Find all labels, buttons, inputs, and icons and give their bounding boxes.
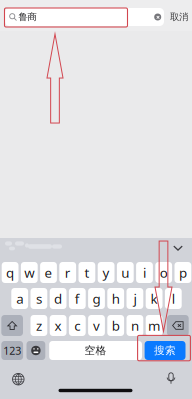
button[interactable]: y	[98, 262, 114, 283]
staticText: g	[92, 290, 100, 307]
staticText: k	[151, 290, 158, 307]
button[interactable]: Next keyboard	[6, 367, 30, 391]
button[interactable]: u	[117, 262, 134, 283]
button[interactable]: d	[50, 288, 66, 309]
button[interactable]: Delete	[167, 315, 189, 336]
button[interactable]: j	[126, 288, 143, 309]
staticText: u	[121, 264, 129, 281]
button[interactable]: a	[11, 288, 28, 309]
button[interactable]: f	[69, 288, 86, 309]
button[interactable]: Search	[145, 341, 185, 360]
staticText: m	[148, 317, 160, 334]
button[interactable]: l	[165, 288, 182, 309]
button[interactable]: i	[136, 262, 153, 283]
button[interactable]: q	[2, 262, 18, 283]
staticText: 123	[3, 343, 21, 358]
staticText: 鲁商	[18, 11, 36, 23]
button[interactable]: n	[126, 315, 143, 336]
button[interactable]: s	[30, 288, 47, 309]
staticText: n	[131, 317, 139, 334]
button[interactable]: z	[30, 315, 47, 336]
staticText: c	[74, 317, 80, 334]
staticText: b	[112, 317, 120, 334]
button[interactable]: h	[107, 288, 124, 309]
button[interactable]: Space	[49, 341, 142, 360]
staticText: 取消	[170, 11, 188, 23]
button[interactable]: r	[59, 262, 76, 283]
button[interactable]: t	[78, 262, 95, 283]
staticText: t	[84, 264, 89, 281]
button[interactable]: p	[174, 262, 191, 283]
staticText: w	[24, 264, 34, 281]
staticText: 空格	[85, 344, 107, 357]
staticText: z	[36, 317, 42, 334]
staticText: 搜索	[154, 344, 176, 357]
staticText: d	[54, 290, 62, 307]
staticText: v	[93, 317, 100, 334]
staticText: j	[133, 290, 136, 307]
staticText: r	[65, 264, 71, 281]
button[interactable]: Hide keyboard	[169, 240, 187, 256]
button[interactable]: c	[69, 315, 86, 336]
button[interactable]: m	[146, 315, 162, 336]
button[interactable]: x	[50, 315, 66, 336]
staticText: e	[44, 264, 52, 281]
button[interactable]: 鲁商	[5, 8, 164, 26]
button[interactable]: g	[88, 288, 105, 309]
button[interactable]: Numbers	[1, 341, 23, 360]
button[interactable]: Dictation	[159, 367, 183, 391]
staticText: x	[55, 317, 62, 334]
staticText: y	[103, 264, 110, 281]
staticText: a	[16, 290, 23, 307]
button[interactable]: w	[21, 262, 38, 283]
button[interactable]: Emoji	[26, 341, 45, 360]
button[interactable]: v	[88, 315, 105, 336]
button[interactable]: e	[40, 262, 57, 283]
staticText: l	[172, 290, 175, 307]
button[interactable]: k	[146, 288, 162, 309]
staticText: s	[36, 290, 42, 307]
button[interactable]: Shift	[1, 315, 23, 336]
button[interactable]: b	[107, 315, 124, 336]
button[interactable]: o	[155, 262, 172, 283]
button[interactable]: 取消	[169, 8, 189, 26]
staticText: p	[179, 264, 187, 281]
staticText: h	[112, 290, 120, 307]
staticText: q	[6, 264, 14, 281]
staticText: i	[143, 264, 146, 281]
staticText: o	[160, 264, 168, 281]
staticText: f	[75, 290, 80, 307]
